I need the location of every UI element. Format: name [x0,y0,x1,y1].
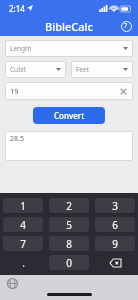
staticText: BibleCalc [45,19,93,34]
button[interactable]: 3 [95,198,135,213]
staticText: Feet [76,65,90,74]
staticText: 2 [66,199,72,213]
staticText: 0 [66,256,72,270]
button[interactable]: 19 [5,82,133,100]
staticText: 2:14 [9,3,25,14]
staticText: 9 [112,237,118,251]
button[interactable]: Help [119,19,133,33]
button[interactable]: Feet [71,61,133,78]
button[interactable]: 1 [3,198,43,213]
button[interactable]: Length [5,40,133,57]
staticText: Length [10,44,32,53]
staticText: 6 [112,218,118,232]
staticText: 7 [20,237,26,251]
button[interactable]: 8 [49,236,89,251]
staticText: ? [124,21,128,31]
staticText: Convert [54,110,85,121]
staticText: 19 [10,86,19,96]
button[interactable]: 4 [3,217,43,232]
button[interactable]: . [3,255,43,270]
staticText: 4 [20,218,26,232]
button[interactable]: Change keyboard language [6,277,19,290]
button[interactable]: 0 [49,255,89,270]
button[interactable]: Backspace [95,255,135,270]
button[interactable]: 6 [95,217,135,232]
button[interactable]: 5 [49,217,89,232]
staticText: 8 [66,237,72,251]
staticText: 1 [20,199,26,213]
button[interactable]: 9 [95,236,135,251]
button[interactable]: Cubit [5,61,66,78]
button[interactable]: 2 [49,198,89,213]
staticText: 28.5 [10,134,24,144]
staticText: Cubit [10,65,27,74]
staticText: 3 [112,199,118,213]
button[interactable]: Clear [118,86,128,96]
button[interactable]: 7 [3,236,43,251]
button[interactable]: Convert [33,107,105,124]
staticText: 5 [66,218,72,232]
staticText: . [22,256,25,270]
